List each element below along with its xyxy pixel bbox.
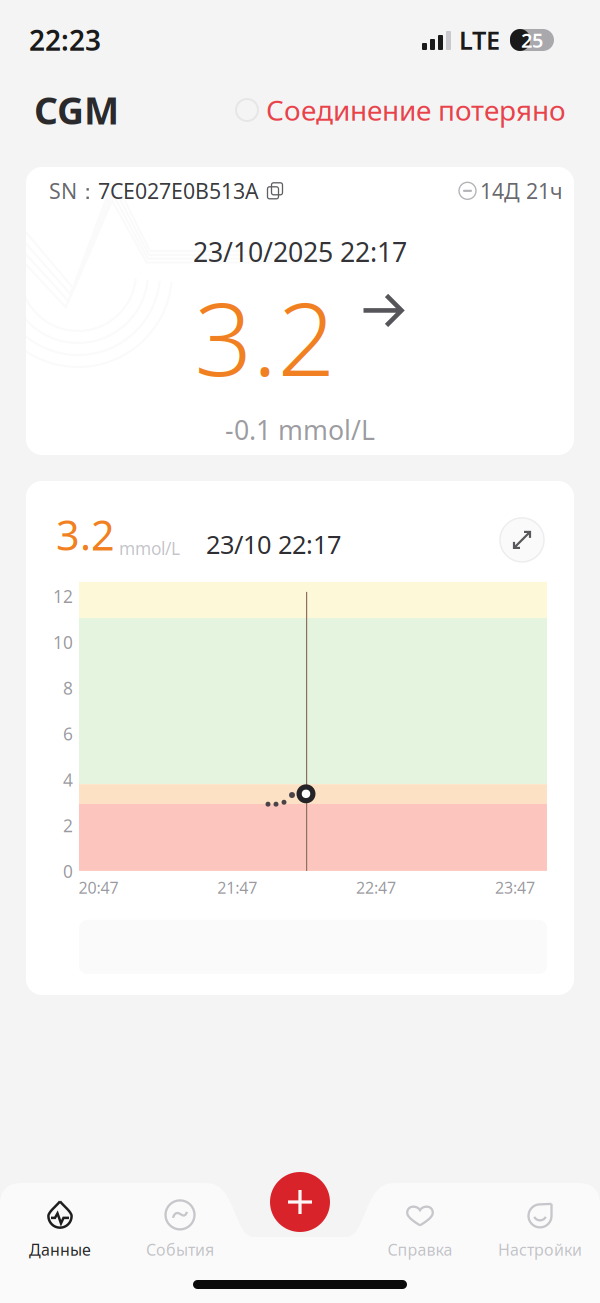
- staticText: mmol/L: [119, 537, 180, 560]
- button[interactable]: Copy serial number: [259, 182, 283, 199]
- staticText: 21:47: [217, 877, 257, 898]
- staticText: 14Д 21ч: [480, 177, 563, 205]
- staticText: События: [146, 1239, 214, 1260]
- button[interactable]: Соединение потеряно: [236, 91, 566, 129]
- staticText: 20:47: [78, 877, 118, 898]
- button[interactable]: Add entry: [270, 1172, 330, 1232]
- staticText: 23/10/2025 22:17: [193, 234, 407, 269]
- staticText: 6: [63, 722, 73, 745]
- staticText: 23/10 22:17: [206, 527, 341, 561]
- staticText: Данные: [29, 1239, 91, 1260]
- staticText: 23:47: [495, 877, 535, 898]
- button[interactable]: Данные: [0, 1193, 120, 1265]
- staticText: 22:23: [29, 21, 101, 59]
- staticText: 7CE027E0B513A: [98, 177, 259, 205]
- staticText: 3.2: [194, 269, 335, 404]
- button[interactable]: Настройки: [480, 1193, 600, 1265]
- staticText: LTE: [459, 23, 500, 57]
- button[interactable]: Expand chart: [500, 518, 544, 562]
- staticText: CGM: [34, 85, 119, 135]
- staticText: 22:47: [356, 877, 396, 898]
- staticText: 3.2: [56, 507, 115, 562]
- staticText: 0: [63, 860, 73, 883]
- staticText: Соединение потеряно: [266, 91, 566, 129]
- staticText: -0.1 mmol/L: [225, 412, 375, 447]
- staticText: 10: [53, 631, 73, 654]
- staticText: 8: [63, 676, 73, 699]
- staticText: Настройки: [498, 1239, 582, 1260]
- button[interactable]: События: [120, 1193, 240, 1265]
- staticText: 4: [63, 768, 73, 791]
- staticText: SN：: [49, 177, 98, 205]
- staticText: 2: [63, 814, 73, 837]
- staticText: 25: [521, 27, 543, 53]
- button[interactable]: Справка: [360, 1193, 480, 1265]
- staticText: Справка: [387, 1239, 452, 1260]
- staticText: 12: [53, 585, 73, 608]
